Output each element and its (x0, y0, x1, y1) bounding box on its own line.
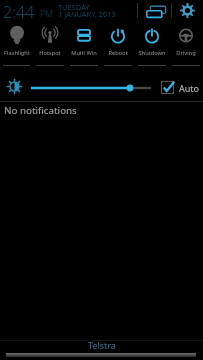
staticText: Shutdown (138, 49, 166, 57)
staticText: Auto (179, 82, 200, 94)
staticText: Telstra (88, 339, 116, 351)
button[interactable]: Driving (169, 21, 203, 67)
button[interactable]: Auto (158, 77, 203, 98)
staticText: Reboot (108, 49, 128, 57)
button[interactable]: Reboot (101, 21, 135, 67)
button[interactable]: Flashlight (0, 21, 33, 67)
button[interactable]: Close notification panel (0, 340, 203, 360)
staticText: Multi Win (71, 49, 97, 57)
staticText: Driving (176, 49, 196, 57)
button[interactable]: Brightness (4, 76, 25, 97)
button[interactable]: Recent apps (140, 0, 171, 21)
staticText: Hotspot (39, 49, 61, 57)
button[interactable]: Multi Win (67, 21, 101, 67)
staticText: No notifications (4, 104, 77, 117)
staticText: TUESDAY (58, 2, 90, 12)
button[interactable]: Hotspot (33, 21, 67, 67)
staticText: 1 JANUARY, 2013 (58, 9, 116, 19)
staticText: Flashlight (4, 49, 30, 57)
button[interactable]: Shutdown (135, 21, 169, 67)
button[interactable]: Settings (173, 0, 202, 21)
staticText: PM (40, 7, 54, 19)
staticText: 2:44 (3, 1, 35, 22)
